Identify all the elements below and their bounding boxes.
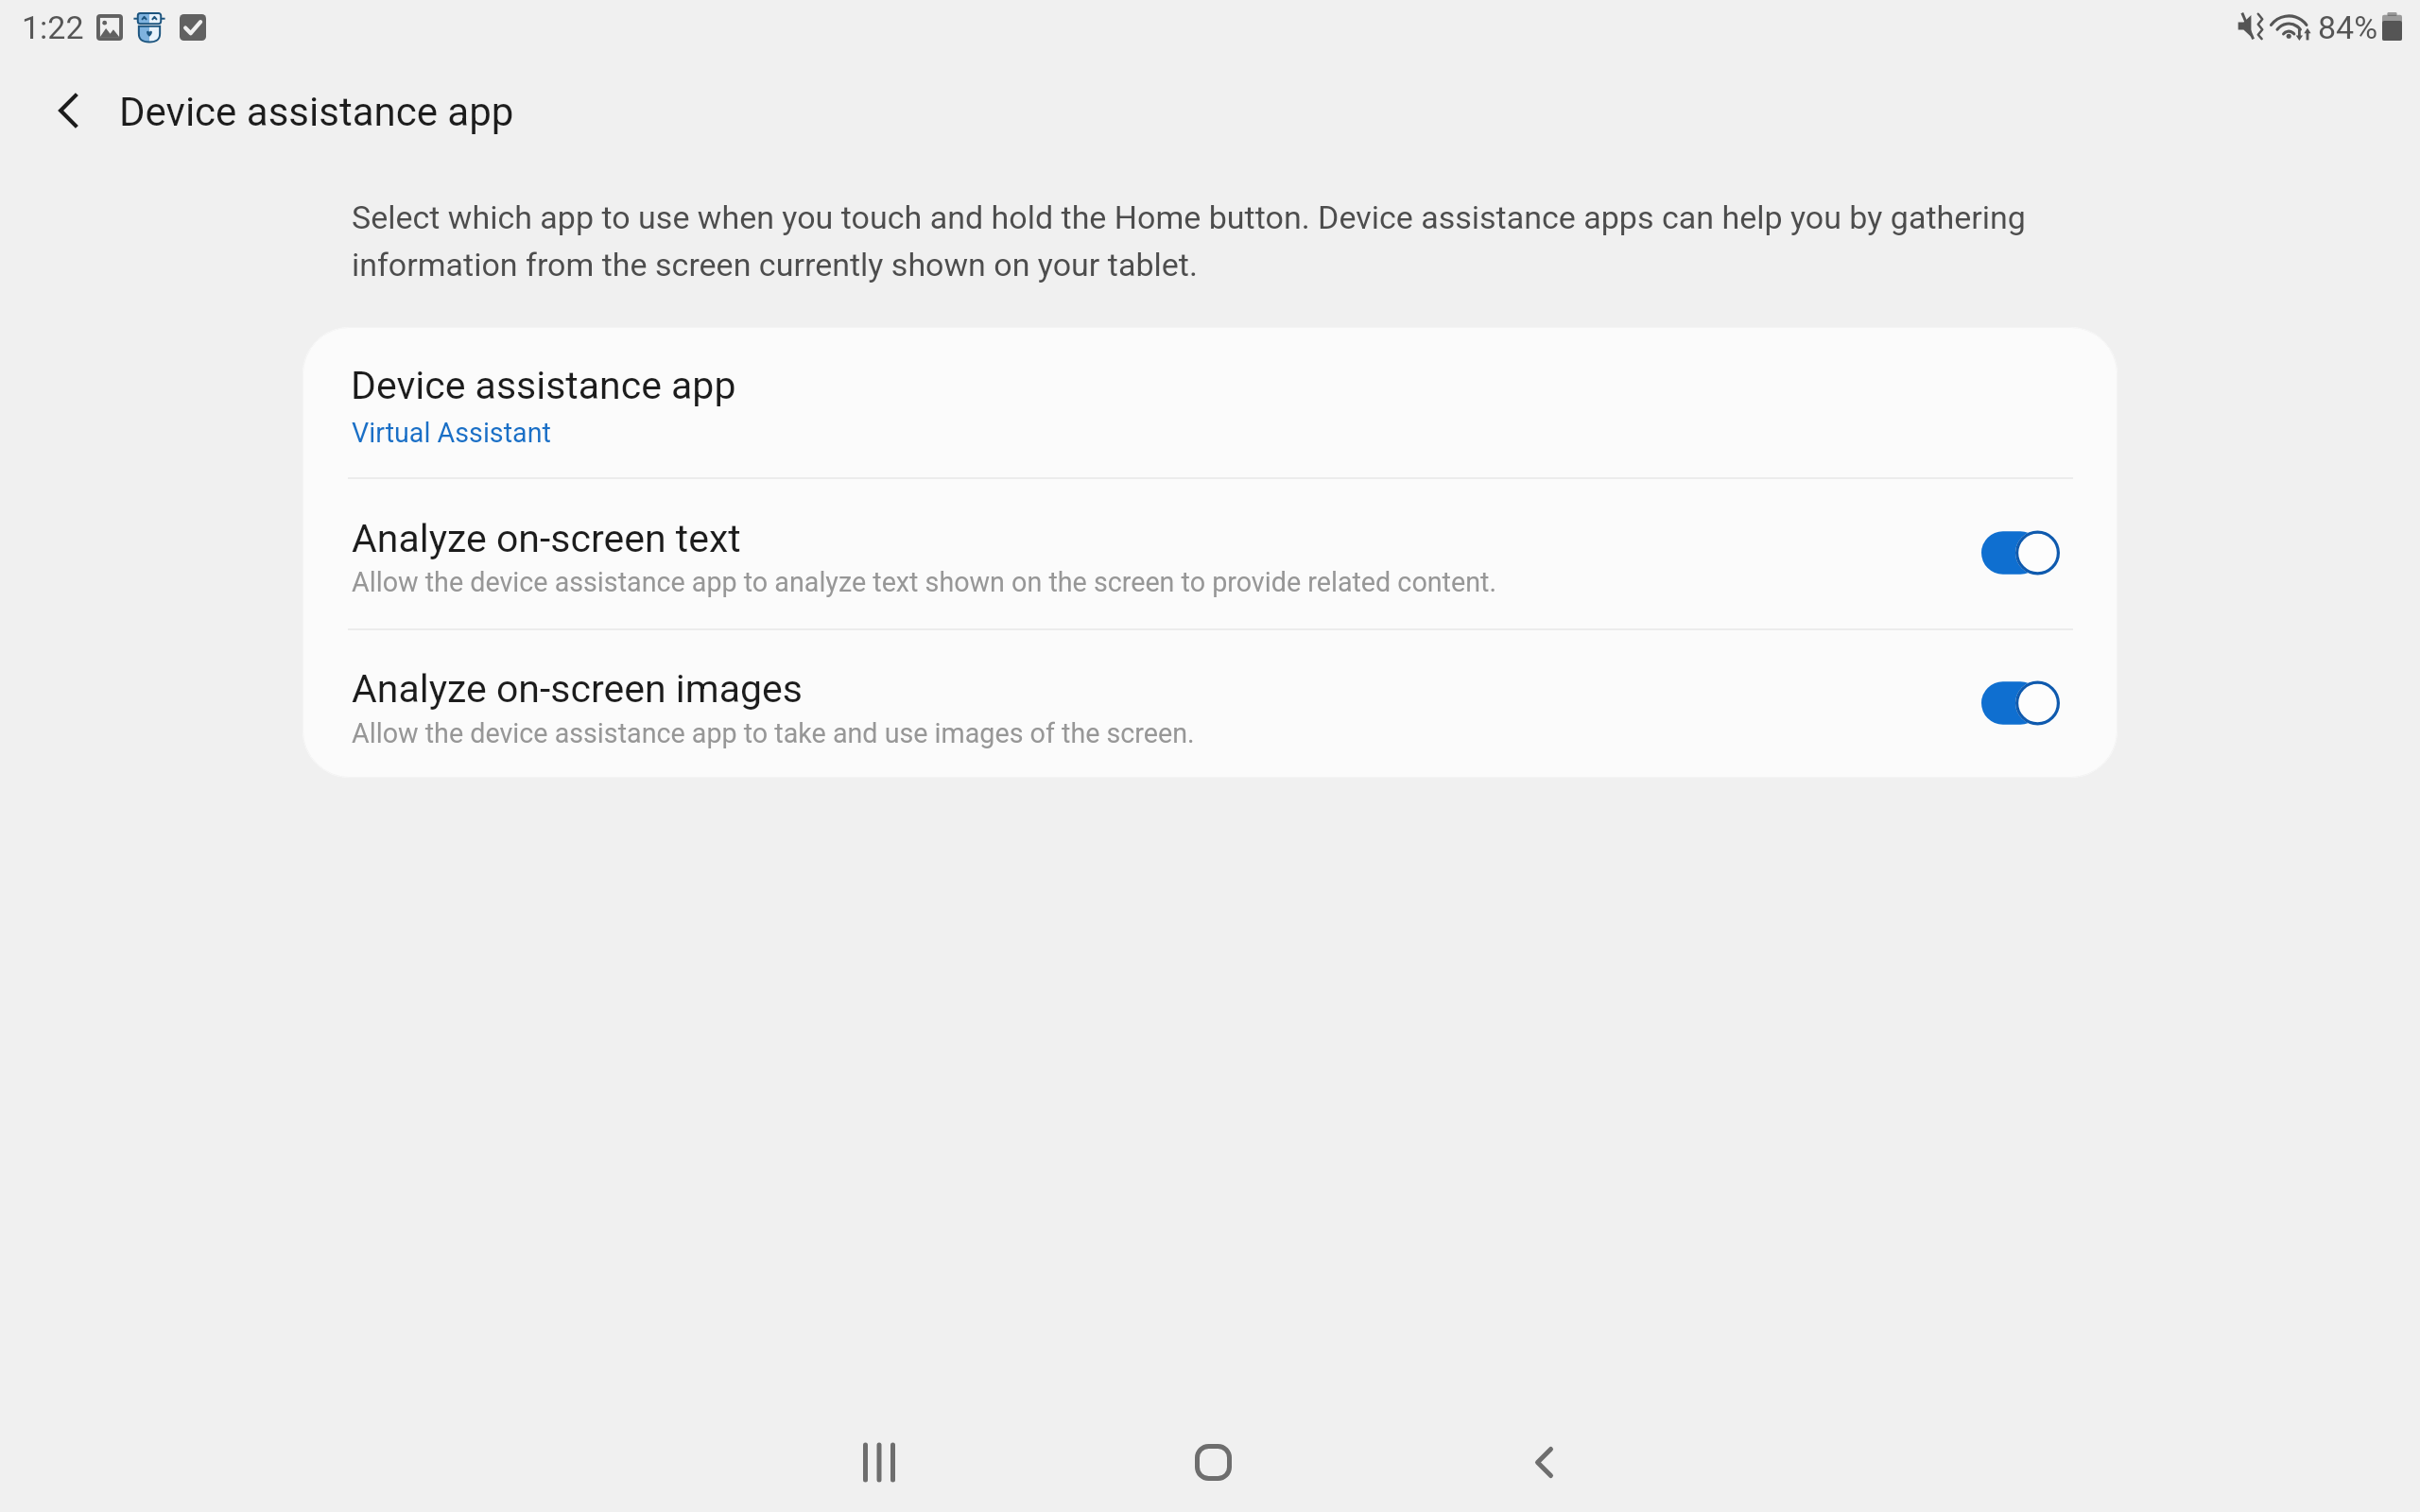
staticText: 84% xyxy=(2318,9,2378,46)
button[interactable]: Home xyxy=(1046,1410,1379,1512)
button[interactable]: Back xyxy=(1377,1410,1710,1512)
staticText: Virtual Assistant xyxy=(352,417,551,449)
button[interactable]: Toggle Analyze on-screen text xyxy=(1969,510,2073,595)
button[interactable]: Analyze on-screen text xyxy=(302,479,2117,628)
button[interactable]: Navigate up xyxy=(23,65,113,156)
staticText: 1:22 xyxy=(22,9,84,46)
button[interactable]: Analyze on-screen images xyxy=(302,630,2117,777)
staticText: Device assistance app xyxy=(351,363,736,408)
button[interactable]: Toggle Analyze on-screen images xyxy=(1969,661,2073,746)
staticText: Analyze on-screen text xyxy=(352,516,741,561)
staticText: Allow the device assistance app to take … xyxy=(352,717,1195,749)
button[interactable]: Device assistance app xyxy=(302,327,2117,477)
staticText: Select which app to use when you touch a… xyxy=(352,198,2053,283)
button[interactable]: Recent apps xyxy=(713,1410,1046,1512)
staticText: Allow the device assistance app to analy… xyxy=(352,566,1496,598)
staticText: Device assistance app xyxy=(119,89,514,135)
staticText: Analyze on-screen images xyxy=(352,666,803,712)
